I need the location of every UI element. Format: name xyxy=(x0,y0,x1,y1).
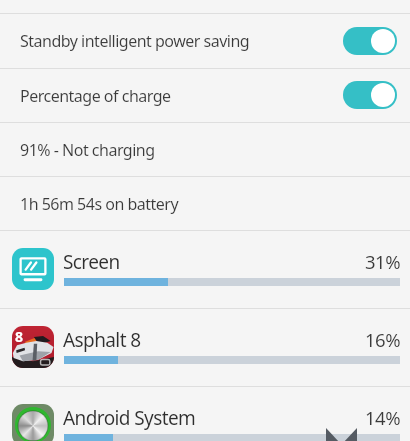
staticText: 8 xyxy=(15,327,24,346)
button[interactable]: 1h 56m 54s on battery xyxy=(0,177,410,230)
button[interactable]: 91% - Not charging xyxy=(0,123,410,176)
staticText: Screen xyxy=(63,249,120,275)
button[interactable]: Standby intelligent power saving xyxy=(0,14,410,68)
other: Toggle xyxy=(343,81,397,109)
staticText: 31% xyxy=(350,249,400,274)
staticText: Asphalt 8 xyxy=(63,327,141,353)
button[interactable]: Android System xyxy=(0,387,410,441)
button[interactable]: Percentage of charge xyxy=(0,69,410,122)
staticText: 1h 56m 54s on battery xyxy=(20,193,179,215)
staticText: 14% xyxy=(350,405,400,430)
other: Toggle xyxy=(343,27,397,55)
staticText: 16% xyxy=(350,327,400,352)
staticText: Standby intelligent power saving xyxy=(20,30,250,52)
staticText: 91% - Not charging xyxy=(20,139,155,161)
button[interactable]: 8 xyxy=(0,309,410,386)
staticText: Android System xyxy=(63,405,196,431)
button[interactable]: Screen xyxy=(0,231,410,308)
staticText: Percentage of charge xyxy=(20,85,171,107)
